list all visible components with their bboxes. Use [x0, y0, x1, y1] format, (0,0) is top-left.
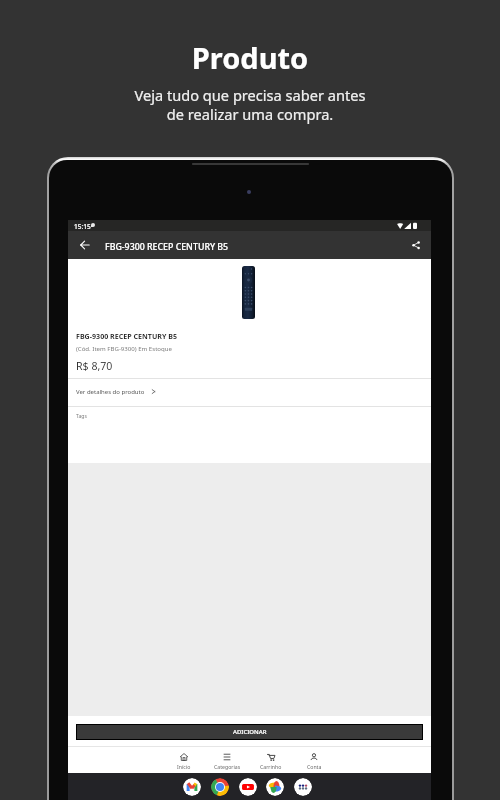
staticText: FBG-9300 RECEP CENTURY B5	[105, 241, 229, 253]
staticText: (Cód. Item FBG-9300) Em Estoque	[76, 344, 173, 352]
button[interactable]: Início	[164, 753, 204, 770]
button[interactable]: YouTube	[239, 778, 257, 796]
staticText: Categorias	[214, 763, 241, 770]
staticText: Produto	[0, 38, 500, 77]
staticText: Ver detalhes do produto	[76, 388, 145, 396]
staticText: Veja tudo que precisa saber antes de rea…	[0, 85, 500, 125]
staticText: FBG-9300 RECEP CENTURY B5	[76, 331, 177, 341]
button[interactable]: ADICIONAR	[76, 724, 423, 740]
button[interactable]: Carrinho	[251, 753, 291, 770]
staticText: ADICIONAR	[233, 728, 267, 736]
staticText: Carrinho	[260, 763, 282, 770]
staticText: Tags	[76, 413, 87, 420]
button[interactable]: Ver detalhes do produto	[68, 378, 431, 405]
staticText: Início	[177, 763, 191, 770]
button[interactable]: All apps	[294, 778, 312, 796]
button[interactable]: Categorias	[207, 753, 247, 770]
button[interactable]: Google Photos	[266, 778, 284, 796]
button[interactable]: Back	[73, 233, 97, 257]
staticText: 15:15	[74, 222, 91, 231]
button[interactable]: Gmail	[183, 778, 201, 796]
staticText: Conta	[307, 763, 322, 770]
button[interactable]: Conta	[294, 753, 334, 770]
button[interactable]: Chrome	[211, 778, 229, 796]
button[interactable]: Share	[404, 233, 428, 257]
staticText: R$ 8,70	[76, 359, 113, 373]
